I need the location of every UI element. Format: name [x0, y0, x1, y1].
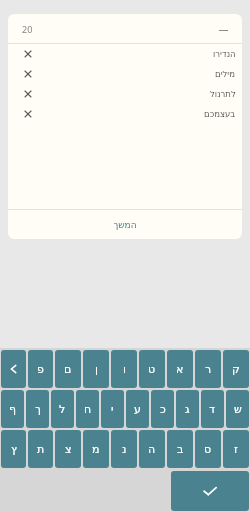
button[interactable]: בעצמכם: [8, 104, 242, 124]
staticText: י: [111, 403, 114, 416]
button[interactable]: ף: [1, 390, 24, 428]
button[interactable]: ת: [28, 430, 53, 468]
button[interactable]: כ: [151, 390, 174, 428]
staticText: ס: [204, 443, 212, 456]
staticText: נ: [122, 443, 127, 456]
staticText: ך: [35, 403, 41, 416]
button[interactable]: Enter: [171, 471, 249, 511]
staticText: לתרנול: [210, 89, 236, 99]
staticText: פ: [37, 363, 44, 376]
staticText: מ: [92, 443, 100, 456]
button[interactable]: ס: [195, 430, 221, 468]
staticText: ת: [37, 443, 45, 456]
staticText: ל: [59, 403, 66, 416]
staticText: 20: [22, 23, 33, 35]
button[interactable]: ז: [223, 430, 249, 468]
button[interactable]: ר: [195, 350, 221, 388]
staticText: הנדירו: [213, 49, 236, 59]
staticText: ד: [209, 403, 216, 416]
button[interactable]: פ: [28, 350, 53, 388]
staticText: בעצמכם: [204, 109, 236, 119]
staticText: ע: [134, 403, 141, 416]
button[interactable]: ץ: [1, 430, 26, 468]
button[interactable]: ו: [111, 350, 137, 388]
button[interactable]: ב: [167, 430, 193, 468]
staticText: ף: [9, 403, 17, 416]
button[interactable]: מ: [83, 430, 109, 468]
staticText: ש: [234, 403, 242, 416]
button[interactable]: הנדירו: [8, 44, 242, 64]
button[interactable]: ה: [139, 430, 165, 468]
staticText: ב: [177, 443, 184, 456]
button[interactable]: ד: [201, 390, 224, 428]
button[interactable]: ג: [176, 390, 199, 428]
button[interactable]: ש: [226, 390, 249, 428]
staticText: א: [176, 363, 184, 376]
button[interactable]: Collapse: [216, 22, 230, 36]
staticText: מילים: [215, 69, 236, 79]
button[interactable]: א: [167, 350, 193, 388]
staticText: ק: [232, 363, 240, 376]
staticText: ג: [185, 403, 190, 416]
button[interactable]: ק: [223, 350, 249, 388]
button[interactable]: מילים: [8, 64, 242, 84]
button[interactable]: ט: [139, 350, 165, 388]
staticText: ו: [123, 363, 126, 376]
button[interactable]: נ: [111, 430, 137, 468]
button[interactable]: צ: [55, 430, 81, 468]
staticText: ז: [234, 443, 238, 456]
button[interactable]: ן: [83, 350, 109, 388]
button[interactable]: ח: [76, 390, 99, 428]
button[interactable]: ם: [55, 350, 81, 388]
staticText: ט: [148, 363, 156, 376]
button[interactable]: ע: [126, 390, 149, 428]
staticText: ם: [64, 363, 72, 376]
staticText: ה: [148, 443, 156, 456]
button[interactable]: י: [101, 390, 124, 428]
button[interactable]: ל: [51, 390, 74, 428]
staticText: ץ: [11, 443, 17, 456]
button[interactable]: Backspace: [1, 350, 26, 388]
staticText: צ: [65, 443, 72, 456]
staticText: המשך: [113, 220, 137, 230]
staticText: ן: [95, 363, 98, 376]
button[interactable]: המשך: [8, 210, 242, 239]
staticText: ר: [205, 363, 212, 376]
button[interactable]: ך: [26, 390, 49, 428]
staticText: כ: [160, 403, 166, 416]
button[interactable]: לתרנול: [8, 84, 242, 104]
staticText: ח: [84, 403, 92, 416]
